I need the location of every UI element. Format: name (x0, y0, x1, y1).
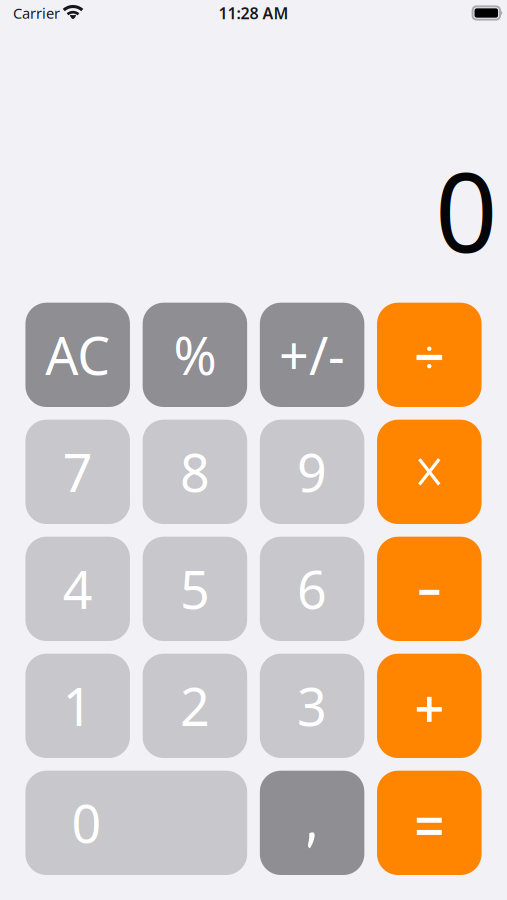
button[interactable]: 2 (143, 654, 247, 758)
button[interactable]: 1 (25, 654, 130, 758)
staticText: AC (45, 320, 110, 389)
button[interactable]: Multiply (377, 420, 482, 524)
staticText: +/- (279, 320, 345, 389)
staticText: 1 (63, 671, 93, 740)
staticText: % (173, 320, 216, 389)
staticText: 11:28 AM (218, 2, 288, 24)
button[interactable]: % (143, 303, 247, 407)
button[interactable]: Decimal separator (260, 771, 364, 875)
button[interactable]: 5 (143, 537, 247, 641)
button[interactable]: 0 (25, 771, 247, 875)
button[interactable]: +/- (260, 303, 364, 407)
staticText: 9 (297, 437, 327, 506)
staticText: 6 (297, 554, 327, 623)
button[interactable]: 6 (260, 537, 364, 641)
button[interactable]: 3 (260, 654, 364, 758)
button[interactable]: 7 (25, 420, 130, 524)
staticText: 5 (180, 554, 210, 623)
staticText: 0 (435, 137, 498, 283)
staticText: 2 (180, 671, 210, 740)
button[interactable]: Divide (377, 303, 482, 407)
staticText: 8 (180, 437, 210, 506)
button[interactable]: Minus (377, 537, 482, 641)
button[interactable]: AC (25, 303, 130, 407)
button[interactable]: 9 (260, 420, 364, 524)
button[interactable]: Equals (377, 771, 481, 875)
staticText: 4 (63, 554, 93, 623)
staticText: 7 (63, 437, 93, 506)
staticText: 3 (297, 671, 327, 740)
button[interactable]: Plus (377, 654, 482, 758)
button[interactable]: 8 (143, 420, 247, 524)
staticText: Carrier (13, 3, 60, 23)
button[interactable]: 4 (25, 537, 130, 641)
staticText: 0 (71, 788, 101, 857)
